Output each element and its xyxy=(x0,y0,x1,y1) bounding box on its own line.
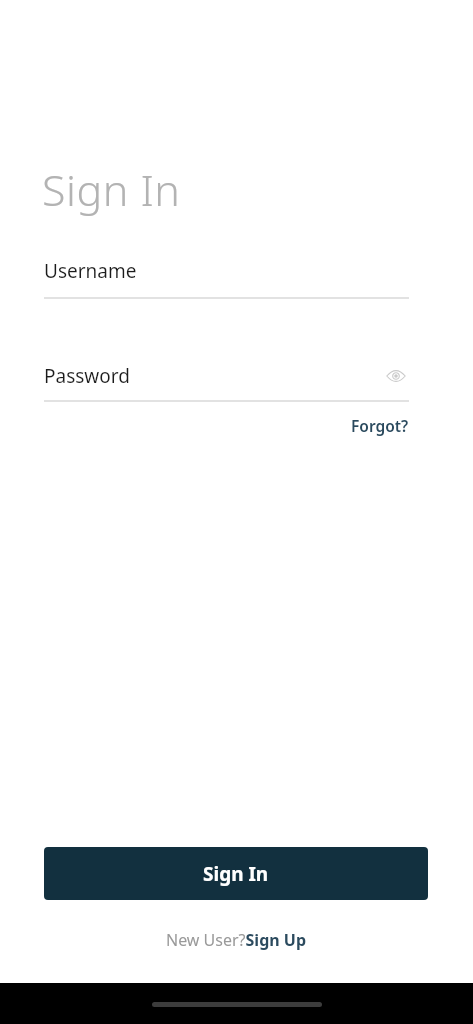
staticText: Sign In xyxy=(203,861,269,887)
button[interactable]: Password xyxy=(44,363,409,389)
staticText: Username xyxy=(44,258,137,284)
staticText: New User?Sign Up xyxy=(166,929,307,951)
staticText: Password xyxy=(44,363,130,389)
staticText: Sign In xyxy=(42,160,181,219)
button[interactable]: Username xyxy=(44,258,409,299)
button[interactable]: Show password xyxy=(383,363,409,389)
button[interactable]: Sign In xyxy=(44,847,428,900)
button[interactable]: Forgot? xyxy=(351,415,409,436)
staticText: Forgot? xyxy=(351,415,409,436)
button[interactable]: New User?Sign Up xyxy=(166,929,307,951)
